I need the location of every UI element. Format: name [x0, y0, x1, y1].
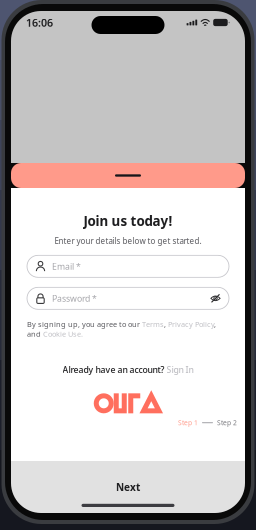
- button[interactable]: By signing up, you agree to our Terms, P…: [27, 319, 229, 339]
- staticText: By signing up, you agree to our Terms, P…: [27, 319, 216, 339]
- button[interactable]: Already have an account? Sign In: [62, 364, 193, 375]
- staticText: Already have an account? Sign In: [62, 364, 193, 375]
- button[interactable]: Password *: [27, 287, 229, 309]
- staticText: Next: [116, 480, 140, 494]
- staticText: Step 2: [217, 418, 237, 427]
- staticText: Join us today!: [83, 212, 172, 230]
- staticText: Enter your details below to get started.: [54, 236, 201, 246]
- staticText: Password *: [52, 293, 97, 304]
- button[interactable]: Next: [11, 480, 245, 494]
- staticText: Email *: [52, 261, 81, 272]
- staticText: 16:06: [26, 15, 53, 30]
- staticText: Step 1: [178, 418, 198, 427]
- button[interactable]: Email *: [27, 255, 229, 277]
